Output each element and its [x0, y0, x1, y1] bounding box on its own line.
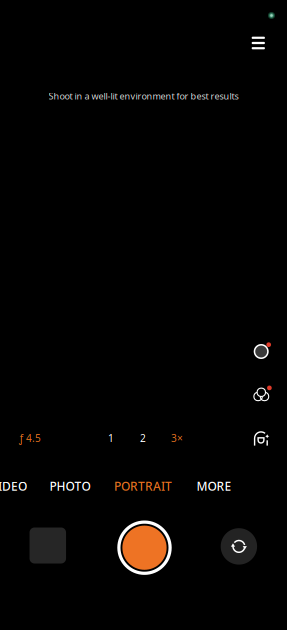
staticText: 3× [171, 431, 183, 445]
staticText: ƒ 4.5 [19, 431, 41, 445]
button[interactable]: Gallery [29, 527, 66, 563]
button[interactable]: PORTRAIT [114, 472, 172, 500]
button[interactable]: 3× [164, 426, 190, 450]
button[interactable]: Menu [243, 28, 273, 58]
button[interactable]: 2 [132, 426, 154, 450]
button[interactable]: Filters [246, 380, 276, 410]
staticText: 1 [108, 431, 114, 445]
button[interactable]: VIDEO [0, 472, 27, 500]
button[interactable]: ƒ 4.5 [14, 426, 46, 450]
button[interactable]: PHOTO [49, 472, 90, 500]
staticText: VIDEO [0, 478, 27, 494]
button[interactable]: Aperture [246, 336, 276, 366]
staticText: 2 [140, 431, 146, 445]
staticText: Shoot in a well-lit environment for best… [48, 90, 238, 102]
staticText: MORE [196, 478, 231, 494]
button[interactable]: MORE [196, 472, 231, 500]
button[interactable]: Shutter [117, 520, 172, 575]
button[interactable]: 1 [100, 426, 122, 450]
staticText: PORTRAIT [114, 478, 172, 494]
button[interactable]: Flip camera [220, 528, 257, 565]
staticText: PHOTO [49, 478, 90, 494]
button[interactable]: Beauty [251, 428, 271, 448]
